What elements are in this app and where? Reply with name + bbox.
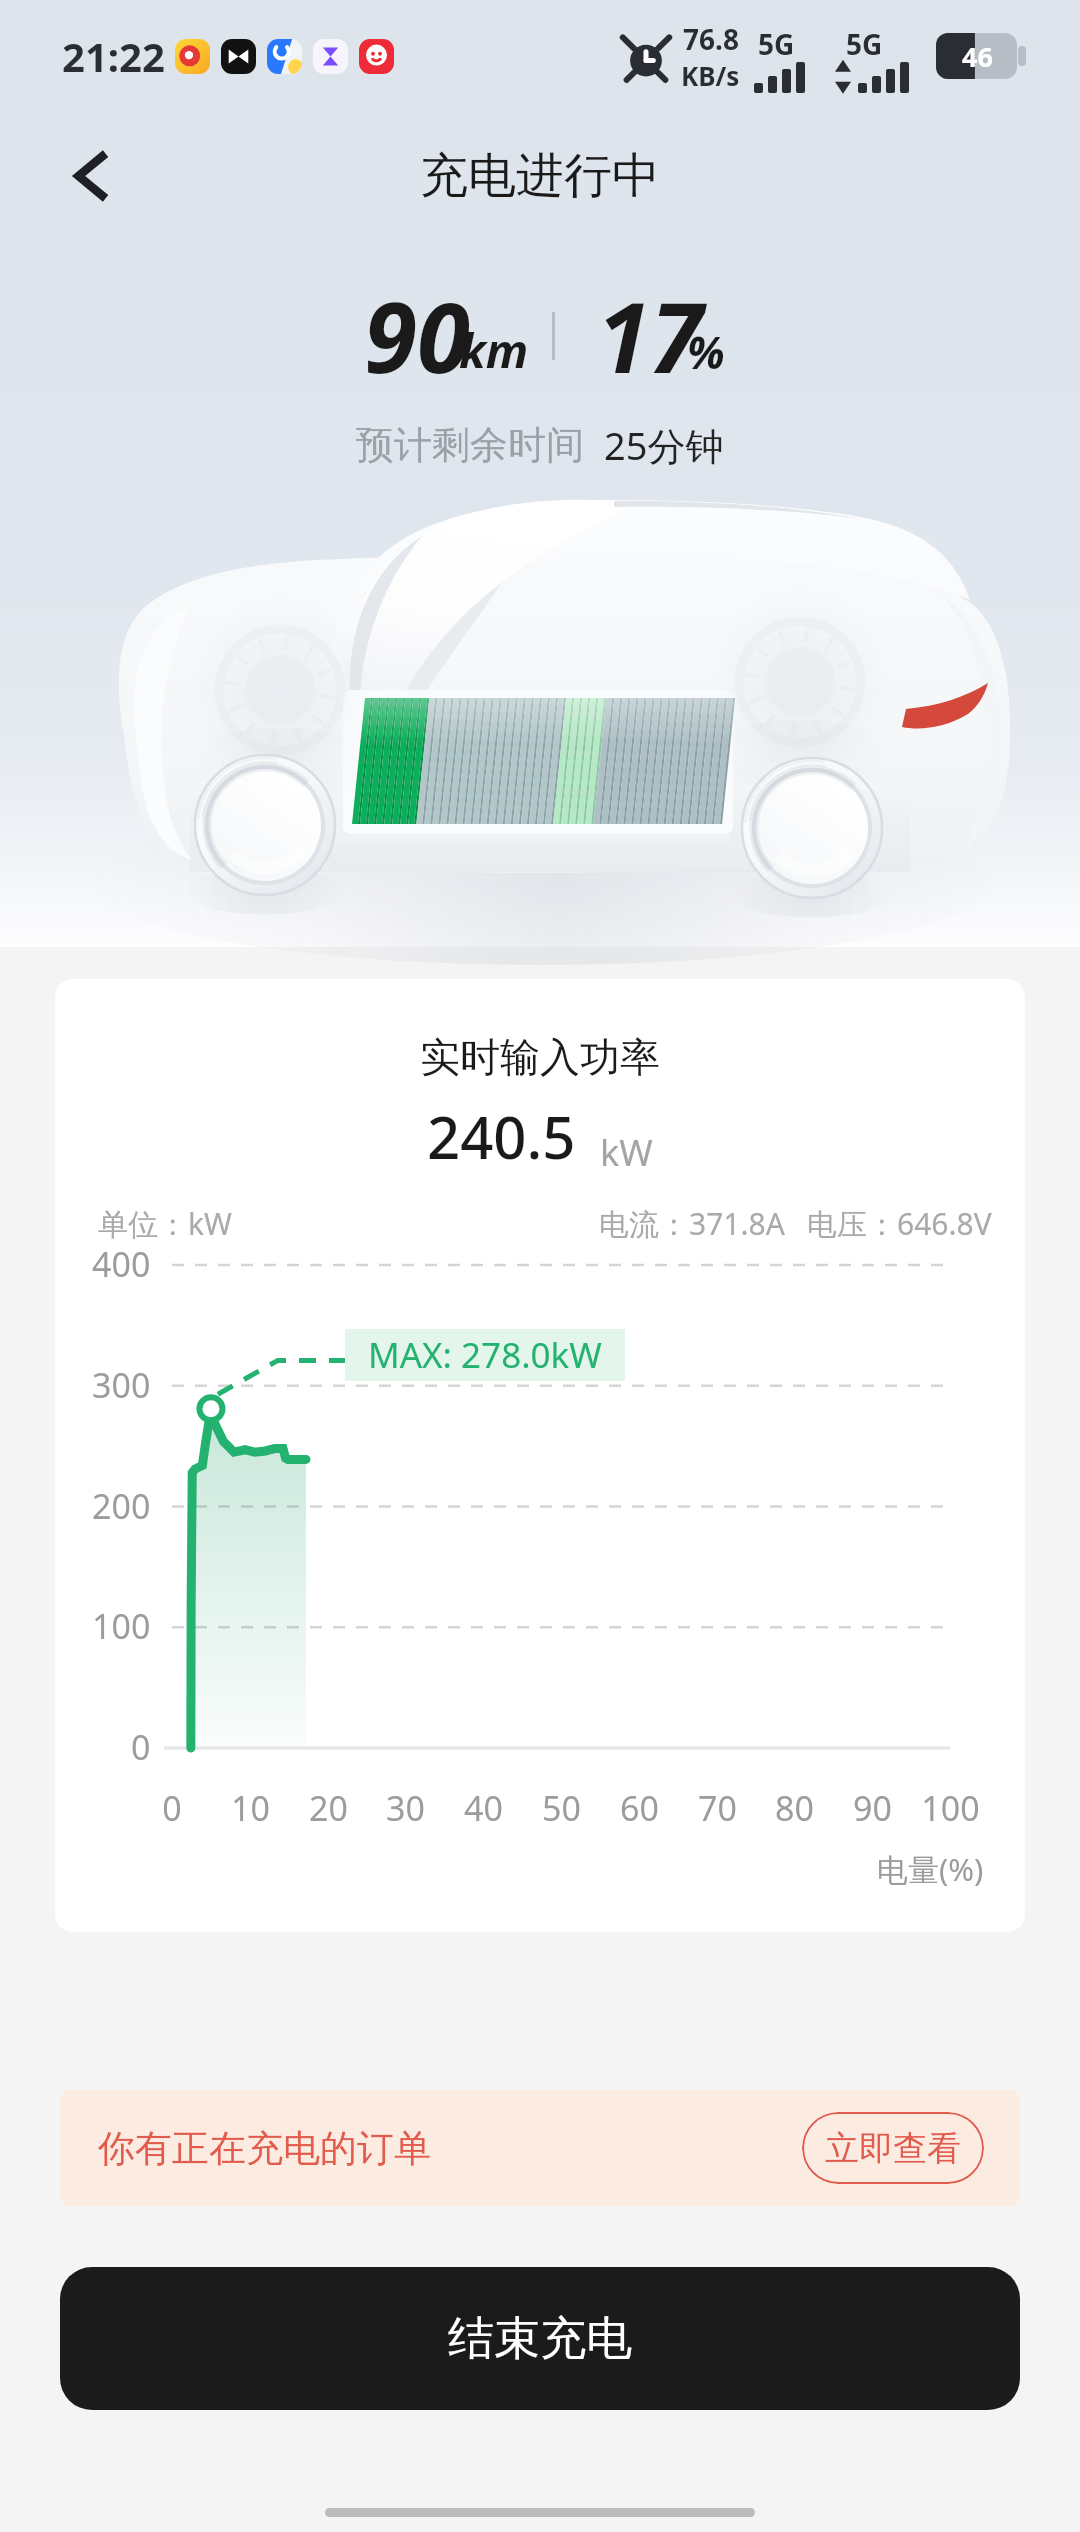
staticText: kW <box>600 1128 653 1177</box>
staticText: km <box>459 318 529 382</box>
staticText: 实时输入功率 <box>55 1032 1025 1082</box>
staticText: 300 <box>92 1362 151 1408</box>
staticText: 电流：371.8A <box>599 1203 785 1244</box>
staticText: 200 <box>92 1483 151 1529</box>
staticText: 90 <box>853 1785 892 1831</box>
staticText: 100 <box>921 1785 980 1831</box>
staticText: 结束充电 <box>448 2310 632 2368</box>
staticText: 76.8 <box>683 20 739 58</box>
staticText: 充电进行中 <box>420 146 660 206</box>
staticText: 30 <box>386 1785 425 1831</box>
staticText: 46 <box>962 38 993 75</box>
staticText: 50 <box>542 1785 581 1831</box>
button[interactable]: Back <box>45 130 137 222</box>
staticText: MAX: 278.0kW <box>368 1331 602 1379</box>
staticText: % <box>687 322 725 382</box>
staticText: 你有正在充电的订单 <box>98 2125 431 2172</box>
staticText: 80 <box>775 1785 814 1831</box>
staticText: 单位：kW <box>98 1203 232 1244</box>
button[interactable]: 立即查看 <box>802 2112 984 2184</box>
staticText: 5G <box>758 25 795 63</box>
staticText: 25分钟 <box>604 419 724 471</box>
staticText: 70 <box>698 1785 737 1831</box>
button[interactable]: 结束充电 <box>60 2267 1020 2410</box>
staticText: 20 <box>309 1785 348 1831</box>
staticText: 电量(%) <box>877 1848 984 1890</box>
staticText: 电压：646.8V <box>807 1203 992 1244</box>
staticText: KB/s <box>681 58 740 93</box>
staticText: 90 <box>364 270 470 401</box>
staticText: 0 <box>162 1785 182 1831</box>
staticText: 17 <box>597 270 703 401</box>
staticText: 60 <box>620 1785 659 1831</box>
staticText: 21:22 <box>62 29 165 83</box>
staticText: 100 <box>92 1603 151 1649</box>
staticText: 预计剩余时间 <box>356 421 584 469</box>
staticText: 立即查看 <box>825 2127 961 2170</box>
button[interactable]: 你有正在充电的订单 <box>60 2090 1020 2206</box>
staticText: 40 <box>464 1785 503 1831</box>
staticText: 240.5 <box>427 1097 576 1176</box>
staticText: 400 <box>92 1241 151 1287</box>
staticText: 5G <box>846 25 883 63</box>
staticText: 0 <box>131 1724 151 1770</box>
staticText: 10 <box>231 1785 270 1831</box>
